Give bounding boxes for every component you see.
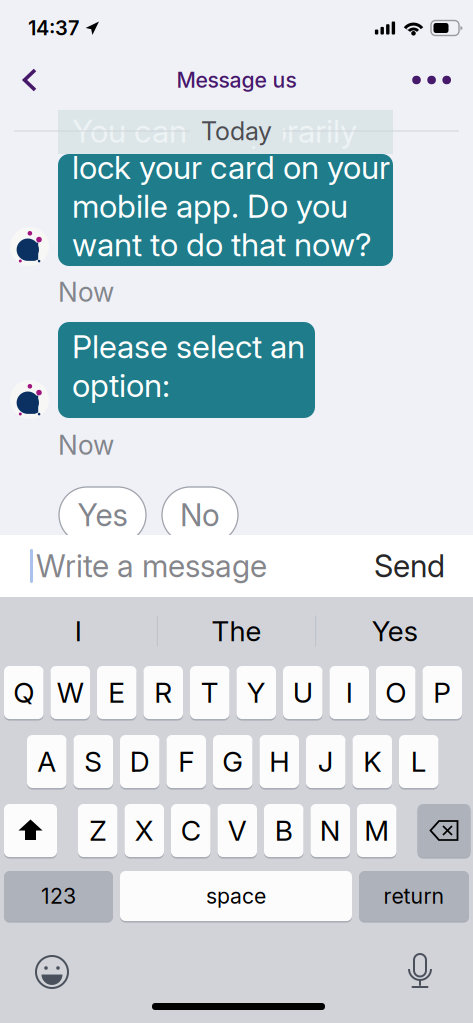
- staticText: Z: [89, 814, 106, 847]
- button[interactable]: S: [73, 735, 113, 790]
- button[interactable]: Y: [236, 666, 276, 721]
- staticText: Y: [247, 676, 266, 709]
- staticText: R: [154, 676, 172, 709]
- staticText: U: [293, 676, 313, 709]
- staticText: Write a message: [36, 547, 267, 584]
- button[interactable]: return: [359, 871, 469, 923]
- staticText: L: [411, 745, 427, 778]
- button[interactable]: P: [422, 666, 462, 721]
- staticText: O: [385, 676, 406, 709]
- staticText: The: [211, 614, 261, 648]
- button[interactable]: Back: [0, 56, 58, 104]
- button[interactable]: Yes: [59, 487, 146, 543]
- staticText: F: [178, 745, 194, 778]
- button[interactable]: C: [171, 804, 210, 859]
- button[interactable]: Send: [360, 535, 459, 597]
- staticText: S: [84, 745, 102, 778]
- staticText: D: [130, 745, 150, 778]
- button[interactable]: W: [50, 666, 90, 721]
- button[interactable]: L: [399, 735, 438, 790]
- staticText: V: [228, 814, 247, 847]
- button[interactable]: space: [120, 871, 352, 923]
- button[interactable]: Yes: [316, 597, 473, 665]
- staticText: Message us: [176, 67, 296, 93]
- staticText: Send: [374, 547, 445, 584]
- staticText: Please select an option:: [72, 327, 305, 405]
- button[interactable]: Shift: [4, 804, 57, 859]
- staticText: space: [206, 883, 266, 909]
- staticText: E: [108, 676, 125, 709]
- staticText: H: [269, 745, 289, 778]
- button[interactable]: Q: [4, 666, 43, 721]
- button[interactable]: R: [143, 666, 183, 721]
- button[interactable]: No: [162, 487, 238, 543]
- staticText: I: [346, 676, 353, 709]
- staticText: No: [180, 496, 220, 533]
- button[interactable]: The: [158, 597, 315, 665]
- staticText: P: [433, 676, 451, 709]
- staticText: Today: [201, 116, 272, 146]
- button[interactable]: Z: [78, 804, 117, 859]
- button[interactable]: H: [259, 735, 299, 790]
- staticText: return: [383, 883, 444, 909]
- staticText: Yes: [372, 614, 418, 648]
- staticText: N: [320, 814, 341, 847]
- button[interactable]: Emoji keyboard: [24, 950, 80, 994]
- staticText: Q: [13, 676, 34, 709]
- button[interactable]: Dictate: [392, 949, 448, 993]
- staticText: I: [75, 614, 82, 648]
- button[interactable]: B: [264, 804, 303, 859]
- staticText: 14:37: [28, 16, 79, 40]
- button[interactable]: O: [376, 666, 415, 721]
- button[interactable]: A: [27, 735, 66, 790]
- staticText: K: [363, 745, 381, 778]
- button[interactable]: G: [213, 735, 252, 790]
- staticText: M: [364, 814, 389, 847]
- button[interactable]: F: [166, 735, 206, 790]
- button[interactable]: Delete: [417, 804, 470, 859]
- staticText: J: [318, 745, 334, 778]
- staticText: G: [222, 745, 243, 778]
- staticText: You can temporarily: [72, 112, 357, 150]
- button[interactable]: U: [283, 666, 322, 721]
- button[interactable]: M: [357, 804, 396, 859]
- button[interactable]: X: [124, 804, 164, 859]
- button[interactable]: E: [97, 666, 136, 721]
- staticText: A: [37, 745, 56, 778]
- staticText: C: [181, 814, 201, 847]
- button[interactable]: V: [217, 804, 257, 859]
- staticText: T: [201, 676, 219, 709]
- button[interactable]: More options: [392, 56, 473, 104]
- staticText: 123: [41, 883, 76, 909]
- staticText: X: [135, 814, 154, 847]
- staticText: Yes: [77, 496, 127, 533]
- staticText: W: [57, 676, 84, 709]
- button[interactable]: 123: [4, 871, 113, 923]
- button[interactable]: I: [0, 597, 157, 665]
- button[interactable]: N: [310, 804, 350, 859]
- staticText: B: [275, 814, 293, 847]
- button[interactable]: I: [329, 666, 369, 721]
- button[interactable]: T: [190, 666, 229, 721]
- staticText: Now: [58, 429, 114, 461]
- button[interactable]: D: [120, 735, 159, 790]
- button[interactable]: K: [352, 735, 392, 790]
- button[interactable]: J: [306, 735, 345, 790]
- staticText: lock your card on your mobile app. Do yo…: [72, 148, 390, 264]
- staticText: Now: [58, 276, 114, 308]
